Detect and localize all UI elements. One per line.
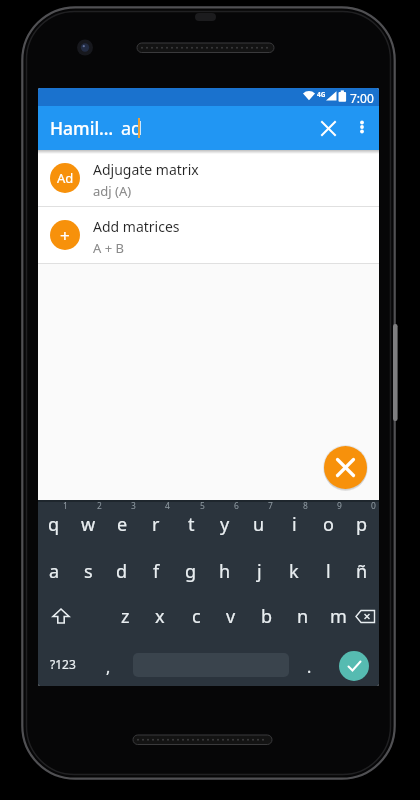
- staticText: f: [153, 559, 160, 584]
- staticText: 8: [303, 500, 308, 512]
- button[interactable]: [347, 112, 377, 142]
- button[interactable]: +: [38, 207, 379, 263]
- staticText: k: [289, 559, 299, 584]
- staticText: Add matrices: [93, 217, 180, 236]
- button[interactable]: [339, 651, 369, 681]
- button[interactable]: n: [286, 598, 320, 634]
- button[interactable]: a: [38, 553, 71, 589]
- staticText: ?123: [50, 656, 76, 672]
- staticText: 9: [337, 500, 342, 512]
- staticText: +: [60, 224, 70, 247]
- staticText: 5: [200, 500, 205, 512]
- staticText: 0: [371, 500, 376, 512]
- staticText: Adjugate matrix: [93, 160, 199, 179]
- button[interactable]: e: [105, 506, 139, 542]
- staticText: 7: [268, 500, 273, 512]
- button[interactable]: q: [38, 506, 71, 542]
- button[interactable]: .: [296, 650, 322, 684]
- button[interactable]: d: [105, 553, 139, 589]
- staticText: adj (A): [93, 182, 132, 200]
- button[interactable]: r: [139, 506, 173, 542]
- staticText: r: [152, 512, 160, 537]
- staticText: t: [188, 512, 195, 537]
- staticText: i: [292, 512, 297, 537]
- staticText: y: [220, 512, 230, 537]
- staticText: e: [117, 512, 128, 537]
- staticText: p: [356, 512, 368, 537]
- staticText: s: [84, 559, 93, 584]
- button[interactable]: s: [71, 553, 105, 589]
- button[interactable]: x: [143, 598, 177, 634]
- staticText: l: [326, 559, 331, 584]
- staticText: g: [185, 559, 197, 584]
- button[interactable]: ?123: [42, 647, 84, 681]
- button[interactable]: w: [71, 506, 105, 542]
- button[interactable]: l: [311, 553, 345, 589]
- button[interactable]: ,: [95, 650, 121, 684]
- staticText: c: [192, 604, 201, 629]
- staticText: n: [297, 604, 309, 629]
- staticText: ,: [106, 656, 111, 678]
- button[interactable]: k: [277, 553, 311, 589]
- button[interactable]: v: [214, 598, 248, 634]
- staticText: a: [49, 559, 60, 584]
- staticText: h: [219, 559, 231, 584]
- button[interactable]: g: [174, 553, 208, 589]
- staticText: 7:00: [350, 90, 374, 106]
- staticText: z: [121, 604, 130, 629]
- button[interactable]: [346, 598, 379, 634]
- button[interactable]: f: [139, 553, 173, 589]
- button[interactable]: c: [179, 598, 213, 634]
- button[interactable]: ñ: [345, 553, 379, 589]
- staticText: o: [323, 512, 334, 537]
- staticText: m: [330, 604, 347, 629]
- button[interactable]: [312, 112, 344, 144]
- button[interactable]: b: [250, 598, 284, 634]
- staticText: ad: [121, 116, 143, 141]
- staticText: x: [155, 604, 165, 629]
- button[interactable]: m: [321, 598, 355, 634]
- staticText: 1: [63, 500, 68, 512]
- staticText: 2: [97, 500, 102, 512]
- staticText: j: [257, 559, 262, 584]
- staticText: b: [261, 604, 273, 629]
- button[interactable]: t: [174, 506, 208, 542]
- staticText: 4: [165, 500, 170, 512]
- staticText: .: [307, 656, 312, 678]
- staticText: d: [116, 559, 128, 584]
- button[interactable]: z: [108, 598, 142, 634]
- staticText: v: [226, 604, 236, 629]
- staticText: u: [253, 512, 265, 537]
- button[interactable]: [324, 446, 367, 489]
- staticText: w: [81, 512, 96, 537]
- button[interactable]: j: [242, 553, 276, 589]
- button[interactable]: h: [208, 553, 242, 589]
- button[interactable]: [42, 598, 80, 634]
- staticText: Hamil…: [50, 116, 114, 140]
- button[interactable]: y: [208, 506, 242, 542]
- staticText: ñ: [356, 559, 368, 584]
- staticText: 3: [131, 500, 136, 512]
- button[interactable]: Ad: [38, 150, 379, 206]
- staticText: 6: [234, 500, 239, 512]
- staticText: 4G: [317, 90, 326, 99]
- button[interactable]: i: [277, 506, 311, 542]
- button[interactable]: u: [242, 506, 276, 542]
- button[interactable]: p: [345, 506, 379, 542]
- staticText: A + B: [93, 239, 124, 257]
- staticText: q: [48, 512, 60, 537]
- button[interactable]: o: [311, 506, 345, 542]
- staticText: Ad: [57, 169, 74, 187]
